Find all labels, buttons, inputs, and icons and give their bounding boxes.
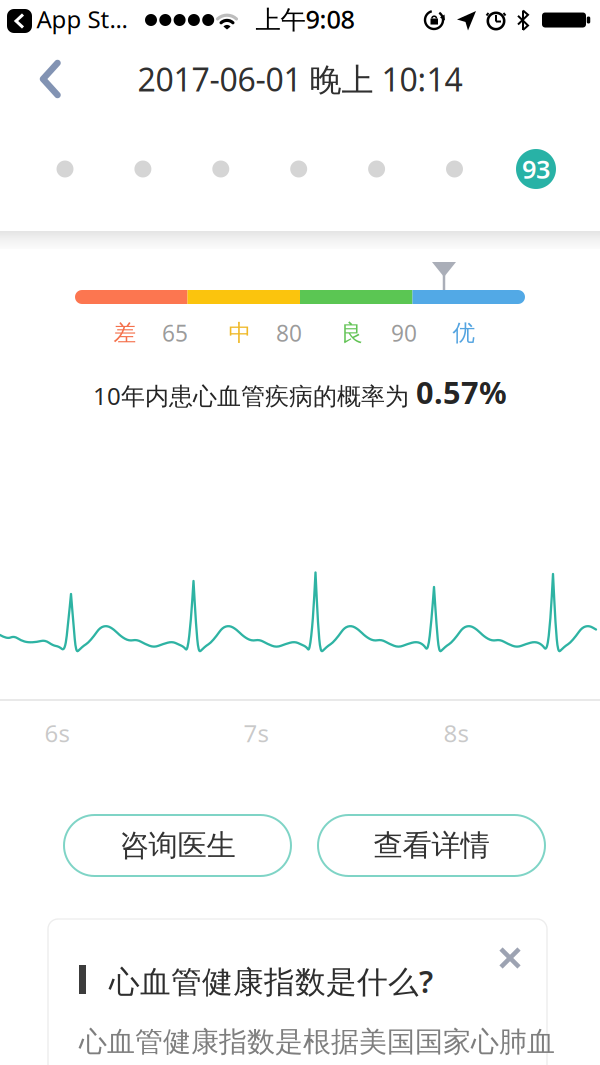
staticText: 查看详情 bbox=[373, 827, 489, 863]
button[interactable]: Back bbox=[32, 57, 68, 101]
staticText: 65 bbox=[162, 318, 188, 348]
staticText: 90 bbox=[391, 318, 417, 348]
staticText: App St... bbox=[36, 3, 127, 35]
staticText: 心血管健康指数是什么? bbox=[109, 961, 433, 1001]
staticText: 8s bbox=[443, 717, 468, 749]
button[interactable]: Close bbox=[488, 936, 532, 980]
button[interactable]: 咨询医生 bbox=[64, 815, 291, 876]
staticText: 优 bbox=[452, 319, 475, 347]
staticText: 6s bbox=[44, 717, 69, 749]
staticText: 10年内患心血管疾病的概率为 0.57% bbox=[93, 372, 507, 412]
staticText: 93 bbox=[522, 152, 550, 186]
staticText: 上午9:08 bbox=[255, 2, 354, 36]
staticText: 差 bbox=[113, 319, 136, 347]
button[interactable]: 93 bbox=[516, 149, 556, 189]
staticText: 80 bbox=[276, 318, 302, 348]
staticText: 中 bbox=[228, 319, 251, 347]
staticText: 咨询医生 bbox=[119, 827, 235, 863]
button[interactable]: 查看详情 bbox=[318, 815, 545, 876]
staticText: 2017-06-01 晚上 10:14 bbox=[137, 58, 462, 100]
staticText: 心血管健康指数是根据美国国家心肺血 bbox=[79, 1025, 555, 1059]
staticText: 良 bbox=[340, 319, 363, 347]
staticText: 7s bbox=[243, 717, 268, 749]
